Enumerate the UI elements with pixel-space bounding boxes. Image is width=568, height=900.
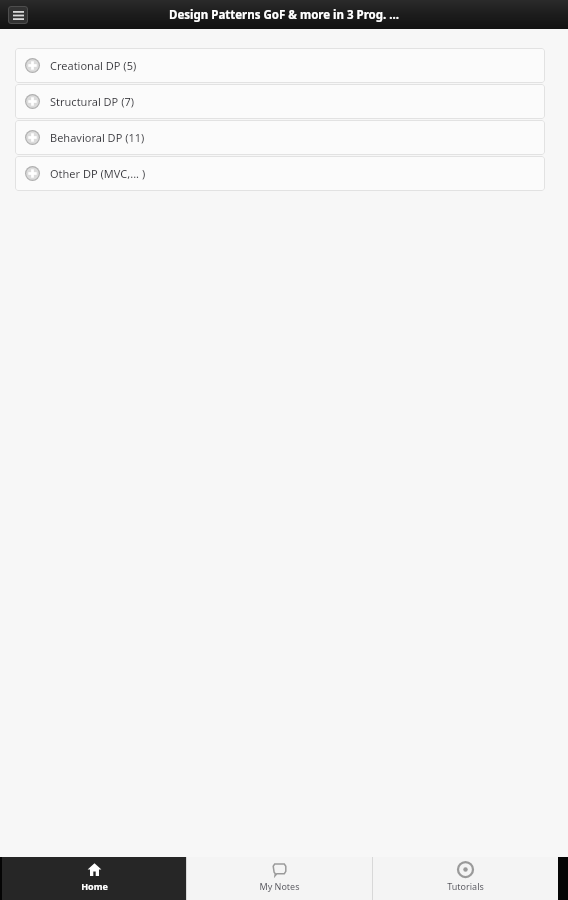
- button[interactable]: My Notes: [187, 857, 372, 900]
- button[interactable]: Creational DP (5): [15, 48, 545, 83]
- button[interactable]: Home: [2, 857, 186, 900]
- staticText: Home: [81, 880, 108, 892]
- staticText: Tutorials: [447, 880, 484, 892]
- button[interactable]: Tutorials: [373, 857, 558, 900]
- staticText: Creational DP (5): [50, 58, 137, 73]
- staticText: Design Patterns GoF & more in 3 Prog. ..…: [169, 7, 399, 23]
- button[interactable]: Behavioral DP (11): [15, 120, 545, 155]
- button[interactable]: Structural DP (7): [15, 84, 545, 119]
- staticText: Other DP (MVC,... ): [50, 166, 146, 181]
- staticText: My Notes: [259, 880, 300, 892]
- staticText: Structural DP (7): [50, 94, 135, 109]
- staticText: Behavioral DP (11): [50, 130, 145, 145]
- button[interactable]: Menu: [8, 6, 28, 24]
- button[interactable]: Other DP (MVC,... ): [15, 156, 545, 191]
